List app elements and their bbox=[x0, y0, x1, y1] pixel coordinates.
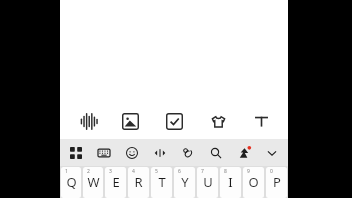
button[interactable]: Insert image bbox=[113, 104, 147, 138]
staticText: 0 bbox=[270, 168, 273, 175]
staticText: E bbox=[112, 173, 120, 191]
staticText: 7 bbox=[201, 168, 204, 175]
button[interactable]: Keyboard modes bbox=[92, 141, 116, 165]
staticText: 1 bbox=[65, 168, 68, 175]
button[interactable]: 2 bbox=[83, 167, 103, 198]
staticText: Y bbox=[181, 173, 189, 191]
button[interactable]: Record audio bbox=[70, 104, 104, 138]
button[interactable]: Insert sticker bbox=[201, 104, 235, 138]
button[interactable]: Collapse toolbar bbox=[260, 141, 284, 165]
button[interactable]: Emoji bbox=[120, 141, 144, 165]
button[interactable]: Text formatting bbox=[244, 104, 278, 138]
button[interactable]: Insert checklist bbox=[157, 104, 191, 138]
button[interactable]: 4 bbox=[128, 167, 149, 198]
staticText: O bbox=[248, 173, 259, 191]
staticText: 5 bbox=[155, 168, 158, 175]
staticText: 2 bbox=[87, 168, 90, 175]
staticText: 4 bbox=[132, 168, 135, 175]
button[interactable]: 6 bbox=[174, 167, 195, 198]
staticText: R bbox=[134, 173, 143, 191]
staticText: 6 bbox=[178, 168, 181, 175]
staticText: T bbox=[158, 173, 166, 191]
staticText: 3 bbox=[109, 168, 112, 175]
staticText: P bbox=[273, 173, 281, 191]
button[interactable]: Sticker bbox=[176, 141, 200, 165]
button[interactable]: 8 bbox=[220, 167, 241, 198]
button[interactable]: Settings bbox=[232, 141, 256, 165]
button[interactable]: 1 bbox=[61, 167, 81, 198]
button[interactable]: 0 bbox=[266, 167, 287, 198]
staticText: U bbox=[203, 173, 213, 191]
staticText: W bbox=[87, 173, 100, 191]
button[interactable]: 9 bbox=[243, 167, 264, 198]
staticText: I bbox=[228, 173, 233, 191]
button[interactable]: 3 bbox=[105, 167, 126, 198]
staticText: 8 bbox=[224, 168, 227, 175]
staticText: 9 bbox=[247, 168, 250, 175]
staticText: Q bbox=[66, 173, 77, 191]
button[interactable]: One handed mode bbox=[148, 141, 172, 165]
button[interactable]: Clipboard bbox=[64, 141, 88, 165]
button[interactable]: 5 bbox=[151, 167, 172, 198]
button[interactable]: 7 bbox=[197, 167, 218, 198]
button[interactable]: Search bbox=[204, 141, 228, 165]
